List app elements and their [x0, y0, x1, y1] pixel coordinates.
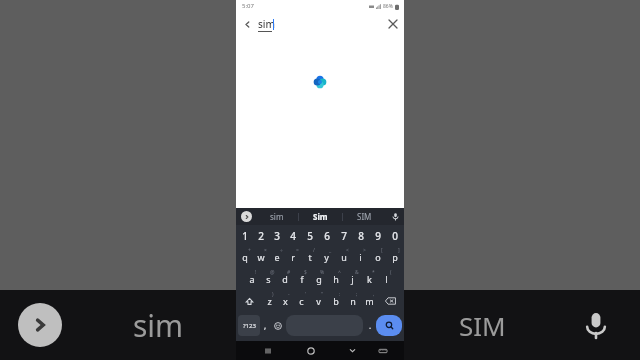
button[interactable]: 6: [318, 225, 335, 246]
button[interactable]: -: [277, 290, 293, 312]
staticText: k: [367, 273, 372, 285]
staticText: s: [266, 273, 271, 285]
button[interactable]: @: [260, 268, 276, 290]
staticText: %: [320, 269, 325, 276]
button[interactable]: ': [293, 290, 310, 312]
button[interactable]: ;: [344, 290, 361, 312]
button[interactable]: (: [378, 268, 395, 290]
staticText: ^: [338, 269, 341, 276]
staticText: x: [283, 295, 288, 307]
button[interactable]: .: [365, 315, 376, 336]
staticText: 86%: [383, 3, 393, 10]
staticText: b: [333, 295, 339, 307]
button[interactable]: 4: [285, 225, 301, 246]
staticText: &: [355, 269, 359, 276]
button[interactable]: Expand suggestions: [18, 303, 62, 347]
button[interactable]: Hide keyboard: [342, 341, 362, 360]
button[interactable]: Recents: [257, 341, 279, 360]
staticText: z: [267, 295, 272, 307]
button[interactable]: #: [276, 268, 293, 290]
staticText: 9: [375, 229, 381, 243]
button[interactable]: 9: [369, 225, 386, 246]
button[interactable]: ,: [361, 290, 378, 312]
button[interactable]: ": [310, 290, 327, 312]
button[interactable]: 2: [253, 225, 269, 246]
button[interactable]: Search: [376, 315, 402, 336]
button[interactable]: Voice input: [576, 305, 616, 345]
button[interactable]: :: [327, 290, 344, 312]
button[interactable]: ): [261, 290, 277, 312]
button[interactable]: _: [318, 246, 335, 268]
button[interactable]: /: [301, 246, 318, 268]
staticText: u: [341, 251, 347, 263]
button[interactable]: Switch keyboard: [373, 341, 393, 360]
button[interactable]: ,: [260, 315, 271, 336]
staticText: f: [300, 273, 304, 285]
button[interactable]: ÷: [269, 246, 285, 268]
staticText: (: [390, 269, 392, 276]
button[interactable]: sim: [256, 208, 298, 225]
staticText: 2: [258, 229, 264, 243]
staticText: o: [375, 251, 381, 263]
button[interactable]: Home: [300, 341, 322, 360]
staticText: 0: [392, 229, 398, 243]
staticText: :: [339, 291, 341, 298]
button[interactable]: Clear: [382, 13, 404, 35]
button[interactable]: ?123: [238, 315, 260, 336]
button[interactable]: 1: [237, 225, 253, 246]
staticText: ?123: [243, 322, 256, 330]
staticText: 7: [341, 229, 347, 243]
button[interactable]: >: [352, 246, 369, 268]
staticText: ': [305, 291, 307, 298]
button[interactable]: Expand suggestions: [236, 208, 256, 225]
staticText: ,: [264, 320, 267, 331]
button[interactable]: Back: [236, 13, 258, 35]
button[interactable]: 5: [301, 225, 318, 246]
button[interactable]: Sim: [299, 208, 342, 225]
button[interactable]: ^: [327, 268, 344, 290]
staticText: p: [392, 251, 398, 263]
staticText: sim: [258, 17, 276, 31]
button[interactable]: Emoji: [271, 315, 284, 336]
button[interactable]: $: [293, 268, 310, 290]
button[interactable]: +: [237, 246, 253, 268]
button[interactable]: 0: [386, 225, 403, 246]
staticText: t: [308, 251, 312, 263]
button[interactable]: *: [361, 268, 378, 290]
button[interactable]: [: [369, 246, 386, 268]
button[interactable]: ]: [386, 246, 403, 268]
button[interactable]: Shift: [237, 290, 261, 312]
button[interactable]: Backspace: [378, 290, 403, 312]
staticText: SIM: [459, 308, 506, 343]
staticText: c: [299, 295, 304, 307]
button[interactable]: SIM: [343, 208, 386, 225]
staticText: 5: [307, 229, 313, 243]
staticText: m: [365, 295, 374, 307]
button[interactable]: ×: [253, 246, 269, 268]
staticText: .: [369, 320, 372, 331]
button[interactable]: <: [335, 246, 352, 268]
button[interactable]: 8: [352, 225, 369, 246]
button[interactable]: !: [244, 268, 260, 290]
button[interactable]: Space: [286, 315, 363, 336]
staticText: e: [274, 251, 280, 263]
button[interactable]: 7: [335, 225, 352, 246]
staticText: sim: [133, 305, 184, 346]
button[interactable]: %: [310, 268, 327, 290]
staticText: ): [272, 291, 274, 298]
staticText: d: [282, 273, 288, 285]
staticText: >: [363, 247, 366, 254]
staticText: ×: [264, 247, 267, 254]
staticText: 3: [274, 229, 280, 243]
staticText: ;: [356, 291, 358, 298]
button[interactable]: &: [344, 268, 361, 290]
staticText: +: [248, 247, 251, 254]
button[interactable]: Voice input: [386, 208, 404, 225]
button[interactable]: =: [285, 246, 301, 268]
staticText: r: [291, 251, 295, 263]
button[interactable]: 3: [269, 225, 285, 246]
staticText: ": [321, 291, 324, 298]
staticText: 4: [290, 229, 296, 243]
staticText: l: [385, 273, 388, 285]
staticText: g: [316, 273, 322, 285]
